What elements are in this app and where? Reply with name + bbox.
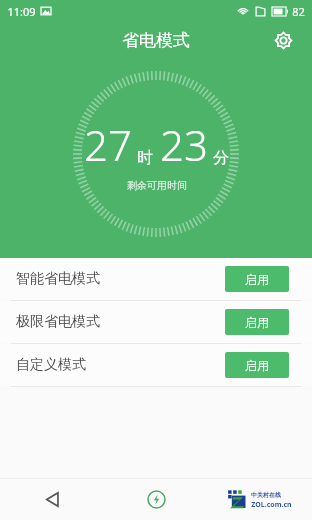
button[interactable]: Power saving bbox=[104, 479, 208, 520]
button[interactable]: Back bbox=[0, 479, 104, 520]
staticText: 启用 bbox=[245, 272, 269, 287]
staticText: 自定义模式 bbox=[16, 356, 86, 374]
button[interactable]: 极限省电模式 bbox=[0, 301, 312, 343]
staticText: 启用 bbox=[245, 315, 269, 330]
button[interactable]: 自定义模式 bbox=[0, 344, 312, 386]
staticText: 剩余可用时间 bbox=[127, 179, 187, 192]
staticText: 中关村在线 bbox=[251, 491, 281, 499]
button[interactable]: Settings bbox=[268, 25, 298, 55]
staticText: 分 bbox=[213, 148, 229, 168]
staticText: ZOL.com.cn bbox=[251, 500, 292, 510]
staticText: 智能省电模式 bbox=[16, 270, 100, 288]
staticText: 省电模式 bbox=[122, 30, 190, 51]
staticText: 时 bbox=[137, 148, 153, 168]
staticText: 极限省电模式 bbox=[16, 313, 100, 331]
button[interactable]: 启用 bbox=[225, 266, 289, 292]
staticText: 11:09 bbox=[7, 4, 36, 19]
button[interactable]: 启用 bbox=[225, 352, 289, 378]
button[interactable]: 启用 bbox=[225, 309, 289, 335]
button[interactable]: 智能省电模式 bbox=[0, 258, 312, 300]
staticText: 23 bbox=[160, 116, 208, 173]
staticText: 27 bbox=[84, 116, 132, 173]
staticText: 82 bbox=[292, 4, 305, 19]
staticText: 启用 bbox=[245, 358, 269, 373]
